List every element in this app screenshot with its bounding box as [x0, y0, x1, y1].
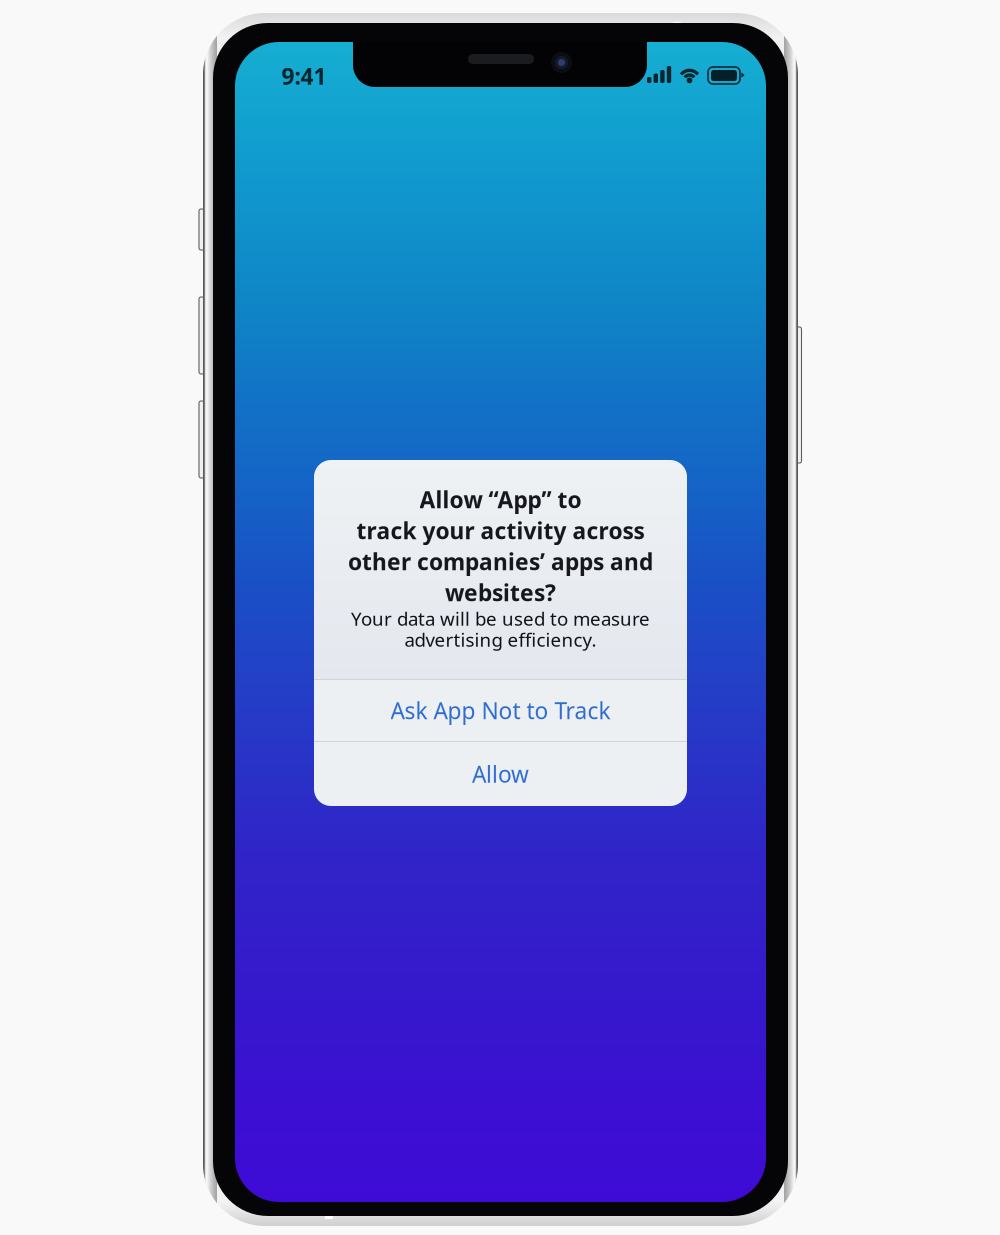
staticText: 9:41	[281, 61, 326, 91]
staticText: track your activity across	[356, 515, 644, 545]
staticText: websites?	[445, 577, 556, 607]
staticText: Your data will be used to measure	[351, 606, 650, 631]
button[interactable]: Allow	[314, 742, 687, 806]
button[interactable]: Ask App Not to Track	[314, 680, 687, 741]
staticText: Allow	[472, 759, 529, 789]
staticText: advertising efficiency.	[404, 627, 596, 652]
staticText: Ask App Not to Track	[390, 695, 610, 725]
staticText: Allow “App” to	[419, 484, 581, 514]
staticText: other companies’ apps and	[348, 546, 653, 576]
